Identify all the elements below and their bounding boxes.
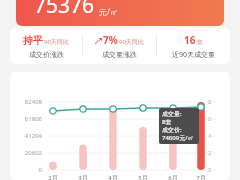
staticText: 套 <box>197 38 203 46</box>
staticText: 0 <box>208 166 222 174</box>
staticText: 20602 <box>10 149 42 157</box>
other: 上涨 <box>95 38 102 45</box>
staticText: 75376 <box>34 0 95 20</box>
button[interactable]: 持平 <box>10 28 82 64</box>
staticText: 61806 <box>10 115 42 123</box>
staticText: 4月 <box>104 174 122 180</box>
staticText: 成交价涨跌 <box>29 50 64 59</box>
staticText: 4 <box>208 132 222 140</box>
button[interactable]: 82408 <box>10 72 230 180</box>
staticText: 近90天成交量 <box>172 50 216 60</box>
staticText: 2月 <box>44 174 62 180</box>
staticText: 2 <box>208 149 222 157</box>
staticText: 41204 <box>10 132 42 140</box>
staticText: 7% <box>103 33 118 47</box>
button[interactable]: 16 <box>157 28 230 64</box>
staticText: 成交量涨跌 <box>102 50 137 59</box>
staticText: 成交价: <box>162 126 182 134</box>
button[interactable]: 75376 <box>16 0 224 26</box>
staticText: 7月 <box>192 174 210 180</box>
staticText: 6 <box>208 115 222 123</box>
button[interactable]: 上涨 <box>83 28 156 64</box>
staticText: 5月 <box>134 174 152 180</box>
staticText: 90天同比 <box>44 38 69 46</box>
staticText: 8 <box>208 98 222 106</box>
staticText: 82408 <box>10 98 42 106</box>
staticText: 0 <box>10 166 42 174</box>
staticText: 16 <box>184 33 196 47</box>
staticText: 74609元/㎡ <box>162 134 194 142</box>
staticText: 元/㎡ <box>99 6 118 17</box>
staticText: 持平 <box>23 34 43 47</box>
staticText: 成交量: <box>162 110 182 118</box>
staticText: 3月 <box>74 174 92 180</box>
staticText: 90天同比 <box>119 38 144 46</box>
staticText: 8套 <box>162 118 172 126</box>
staticText: 6月 <box>164 174 182 180</box>
